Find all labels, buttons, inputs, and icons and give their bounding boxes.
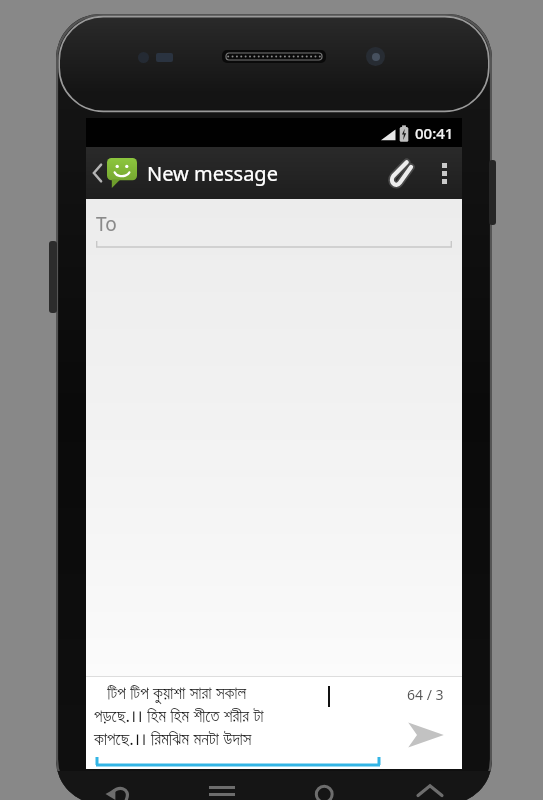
button[interactable]: Search (298, 771, 354, 800)
button[interactable]: Home (402, 771, 458, 800)
staticText: To (96, 211, 117, 237)
staticText: টিপ টিপ কুয়াশা সারা সকাল (94, 681, 247, 704)
button[interactable]: টিপ টিপ কুয়াশা সারা সকাল (86, 677, 388, 769)
button[interactable]: Menu (194, 771, 250, 800)
button[interactable]: More options (426, 147, 462, 199)
button[interactable]: Send (388, 710, 462, 759)
staticText: পড়ছে.।। হিম হিম শীতে শরীর টা (94, 704, 264, 727)
staticText: কাপছে.।। রিমঝিম মনটা উদাস (94, 727, 252, 750)
staticText: 64 / 3 (407, 685, 444, 704)
button[interactable]: Navigate up (86, 147, 141, 199)
staticText: New message (147, 160, 278, 187)
button[interactable]: To (86, 199, 462, 249)
button[interactable]: Back (90, 771, 146, 800)
staticText: 00:41 (415, 123, 454, 143)
button[interactable]: Attach (374, 147, 426, 199)
